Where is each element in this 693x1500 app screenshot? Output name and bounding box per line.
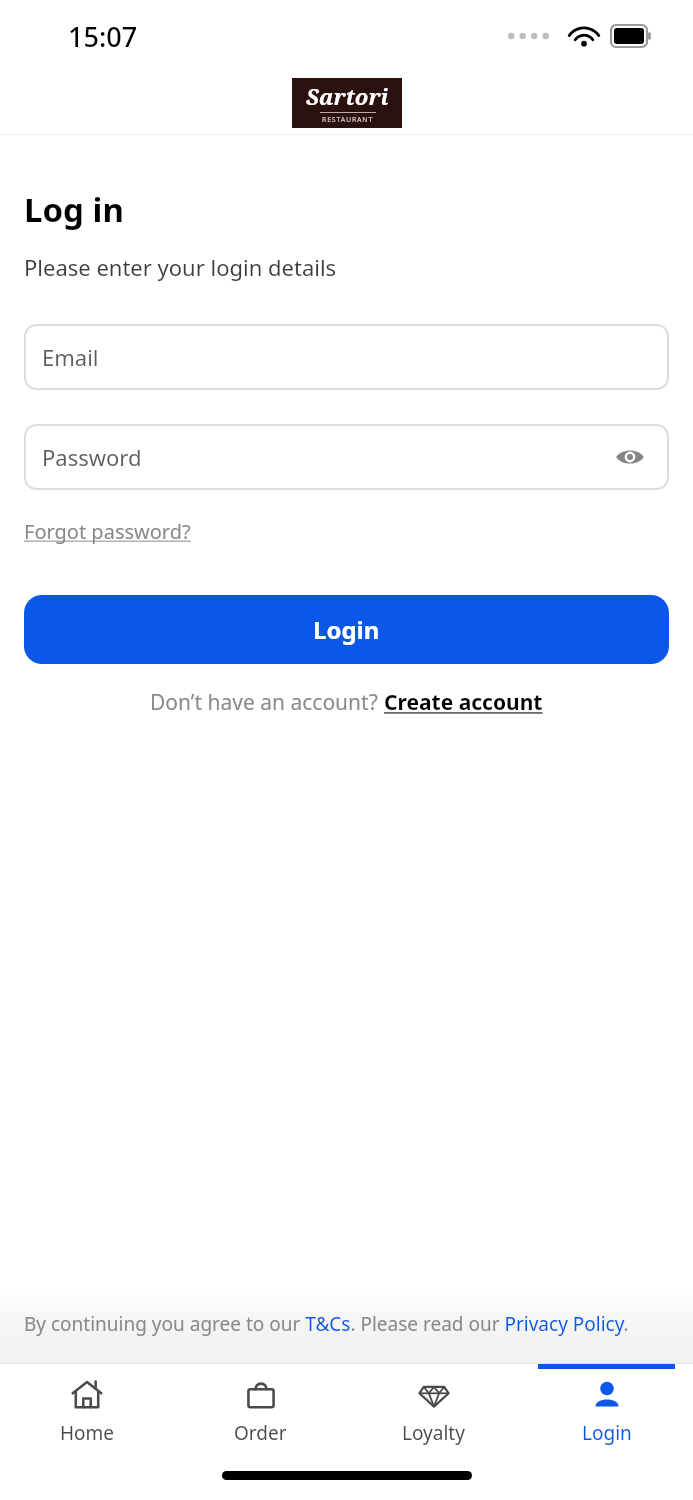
staticText: Order bbox=[234, 1420, 287, 1446]
staticText: Loyalty bbox=[402, 1420, 465, 1446]
button[interactable]: Password bbox=[24, 424, 669, 490]
staticText: Forgot password? bbox=[24, 518, 191, 545]
staticText: Login bbox=[582, 1420, 632, 1446]
staticText: By continuing you agree to our T&Cs. Ple… bbox=[24, 1311, 629, 1337]
button[interactable]: Create account bbox=[384, 688, 543, 717]
staticText: Create account bbox=[384, 688, 543, 717]
staticText: Email bbox=[42, 342, 99, 372]
staticText: Login bbox=[313, 613, 380, 646]
staticText: Please enter your login details bbox=[24, 252, 337, 282]
button[interactable]: Forgot password? bbox=[24, 518, 191, 545]
button[interactable]: Loyalty bbox=[347, 1364, 520, 1446]
button[interactable]: Order bbox=[174, 1364, 347, 1446]
staticText: Don’t have an account? bbox=[150, 688, 384, 717]
staticText: Log in bbox=[24, 187, 124, 232]
staticText: Home bbox=[60, 1420, 115, 1446]
staticText: RESTAURANT bbox=[322, 115, 374, 125]
staticText: Password bbox=[42, 442, 142, 472]
button[interactable]: Login bbox=[24, 595, 669, 664]
button[interactable]: Home bbox=[0, 1364, 174, 1446]
button[interactable]: Login bbox=[520, 1364, 693, 1446]
staticText: 15:07 bbox=[68, 18, 138, 55]
staticText: Sartori bbox=[306, 81, 389, 111]
button[interactable]: Email bbox=[24, 324, 669, 390]
button[interactable]: Show password bbox=[613, 440, 647, 474]
